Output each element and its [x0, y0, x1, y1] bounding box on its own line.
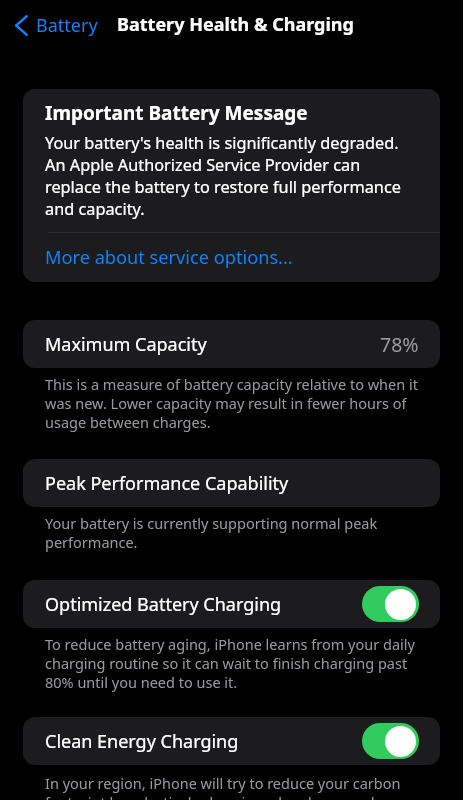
- button[interactable]: Optimized Battery Charging: [23, 580, 440, 628]
- button[interactable]: Clean Energy Charging: [23, 717, 440, 765]
- staticText: More about service options...: [45, 245, 293, 270]
- staticText: Important Battery Message: [45, 100, 308, 126]
- staticText: Battery: [36, 13, 98, 38]
- staticText: Battery Health & Charging: [117, 12, 354, 37]
- staticText: Clean Energy Charging: [45, 729, 239, 754]
- staticText: Peak Performance Capability: [45, 471, 289, 496]
- button[interactable]: Toggle setting: [362, 586, 419, 622]
- button[interactable]: Maximum Capacity: [23, 320, 440, 368]
- staticText: Optimized Battery Charging: [45, 592, 282, 617]
- staticText: In your region, iPhone will try to reduc…: [45, 774, 417, 800]
- button[interactable]: Peak Performance Capability: [23, 459, 440, 507]
- staticText: Maximum Capacity: [45, 332, 207, 357]
- staticText: This is a measure of battery capacity re…: [45, 375, 423, 432]
- button[interactable]: Toggle setting: [362, 723, 419, 759]
- staticText: 78%: [380, 331, 419, 358]
- button[interactable]: Battery: [12, 9, 102, 42]
- staticText: To reduce battery aging, iPhone learns f…: [45, 635, 417, 692]
- staticText: Your battery's health is significantly d…: [45, 132, 417, 220]
- button[interactable]: More about service options...: [23, 233, 440, 280]
- staticText: Your battery is currently supporting nor…: [45, 514, 400, 552]
